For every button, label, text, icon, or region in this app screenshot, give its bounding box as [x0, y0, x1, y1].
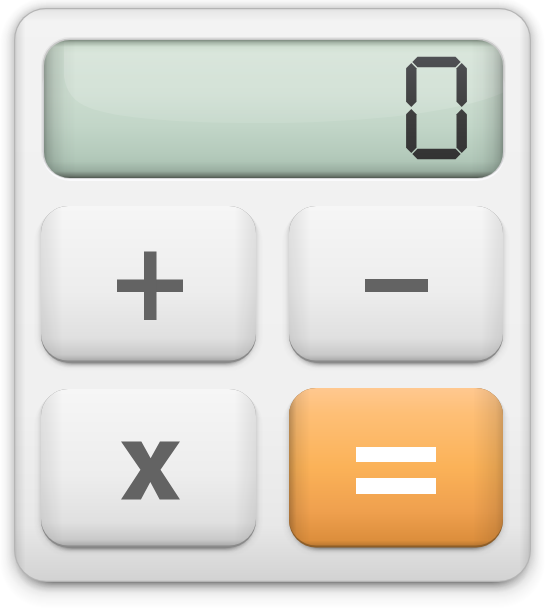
button[interactable]: Minus — [289, 206, 503, 361]
button[interactable]: Equals — [289, 388, 503, 546]
button[interactable]: Multiply — [41, 389, 256, 546]
button[interactable]: Plus — [41, 206, 256, 361]
